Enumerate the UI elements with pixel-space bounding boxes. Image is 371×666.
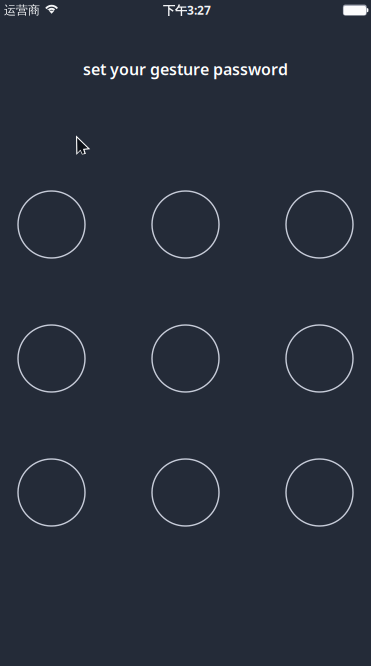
button[interactable]: Gesture dot 4 (18, 325, 85, 392)
button[interactable]: Gesture dot 5 (152, 325, 219, 392)
staticText: 运营商 (4, 3, 40, 18)
button[interactable]: Gesture dot 7 (18, 459, 85, 526)
button[interactable]: Gesture dot 9 (286, 459, 353, 526)
staticText: set your gesture password (83, 58, 288, 80)
button[interactable]: Gesture dot 2 (152, 191, 219, 258)
button[interactable]: Gesture dot 6 (286, 325, 353, 392)
button[interactable]: Gesture dot 8 (152, 459, 219, 526)
button[interactable]: Gesture dot 1 (18, 191, 85, 258)
button[interactable]: Gesture dot 3 (286, 191, 353, 258)
staticText: 下午3:27 (163, 2, 211, 18)
